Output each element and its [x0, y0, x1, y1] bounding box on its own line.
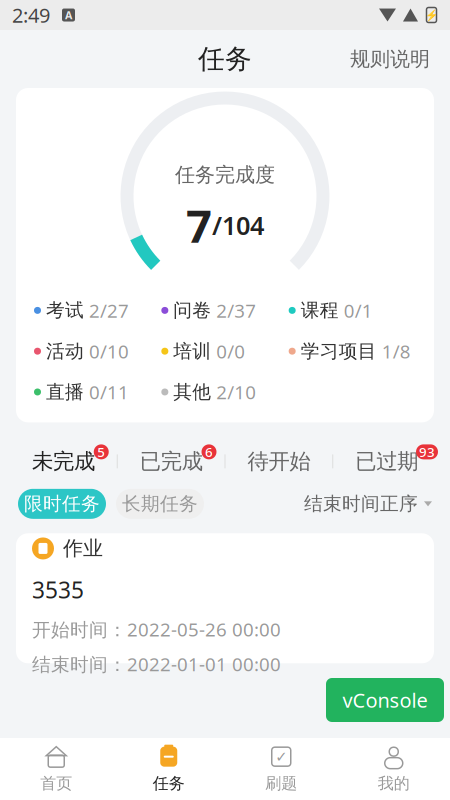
staticText: 2/27 [89, 298, 129, 323]
staticText: 待开始 [247, 448, 310, 474]
button[interactable]: 长期任务 [116, 489, 204, 519]
button[interactable]: 规则说明 [340, 39, 440, 79]
staticText: 结束时间正序 [304, 492, 418, 515]
button[interactable]: ✓ [225, 738, 337, 800]
staticText: 0/1 [344, 298, 373, 323]
staticText: 考试 [46, 299, 84, 322]
staticText: 问卷 [173, 299, 211, 322]
button[interactable]: 未完成 [10, 438, 117, 484]
button[interactable]: 任务 [112, 738, 225, 800]
staticText: 规则说明 [350, 47, 430, 71]
staticText: 0/10 [89, 339, 129, 364]
staticText: 已过期 [355, 448, 418, 474]
staticText: 7 [186, 195, 212, 255]
staticText: 1/8 [382, 339, 411, 364]
staticText: 未完成 [32, 448, 95, 474]
staticText: 2/10 [216, 380, 256, 404]
staticText: 0/0 [216, 339, 245, 364]
button[interactable]: 已完成 [118, 438, 225, 484]
staticText: 长期任务 [122, 492, 198, 515]
staticText: 限时任务 [24, 492, 100, 515]
staticText: 活动 [46, 340, 84, 363]
staticText: 直播 [46, 380, 84, 403]
staticText: 2:49 [12, 2, 50, 28]
staticText: 首页 [40, 774, 72, 793]
staticText: 结束时间：2022-01-01 00:00 [32, 652, 281, 676]
staticText: vConsole [342, 687, 427, 713]
staticText: 开始时间：2022-05-26 00:00 [32, 617, 281, 642]
staticText: 6 [205, 443, 213, 461]
button[interactable]: 结束时间正序 [304, 486, 432, 521]
staticText: A [65, 8, 72, 22]
staticText: 任务 [153, 774, 185, 793]
staticText: 已完成 [140, 448, 203, 474]
staticText: 任务 [198, 43, 252, 75]
staticText: ✓ [275, 748, 287, 765]
button[interactable]: 作业 [16, 533, 434, 663]
staticText: 学习项目 [301, 340, 377, 363]
staticText: /104 [212, 208, 264, 242]
staticText: 3535 [32, 575, 84, 605]
staticText: 刷题 [265, 774, 297, 793]
button[interactable]: 已过期 [333, 438, 440, 484]
button[interactable]: 我的 [337, 738, 450, 800]
staticText: 0/11 [89, 380, 129, 404]
staticText: 培训 [173, 340, 211, 363]
staticText: 5 [97, 443, 105, 461]
staticText: 其他 [173, 380, 211, 403]
button[interactable]: vConsole [326, 678, 444, 722]
staticText: 2/37 [216, 298, 256, 323]
button[interactable]: 待开始 [225, 438, 332, 484]
button[interactable]: 限时任务 [18, 489, 106, 519]
staticText: 任务完成度 [175, 163, 275, 187]
staticText: 课程 [301, 299, 339, 322]
staticText: ⚡ [425, 9, 438, 21]
staticText: 作业 [63, 536, 103, 561]
staticText: 93 [419, 443, 435, 461]
button[interactable]: 首页 [0, 738, 112, 800]
staticText: 我的 [378, 774, 410, 793]
